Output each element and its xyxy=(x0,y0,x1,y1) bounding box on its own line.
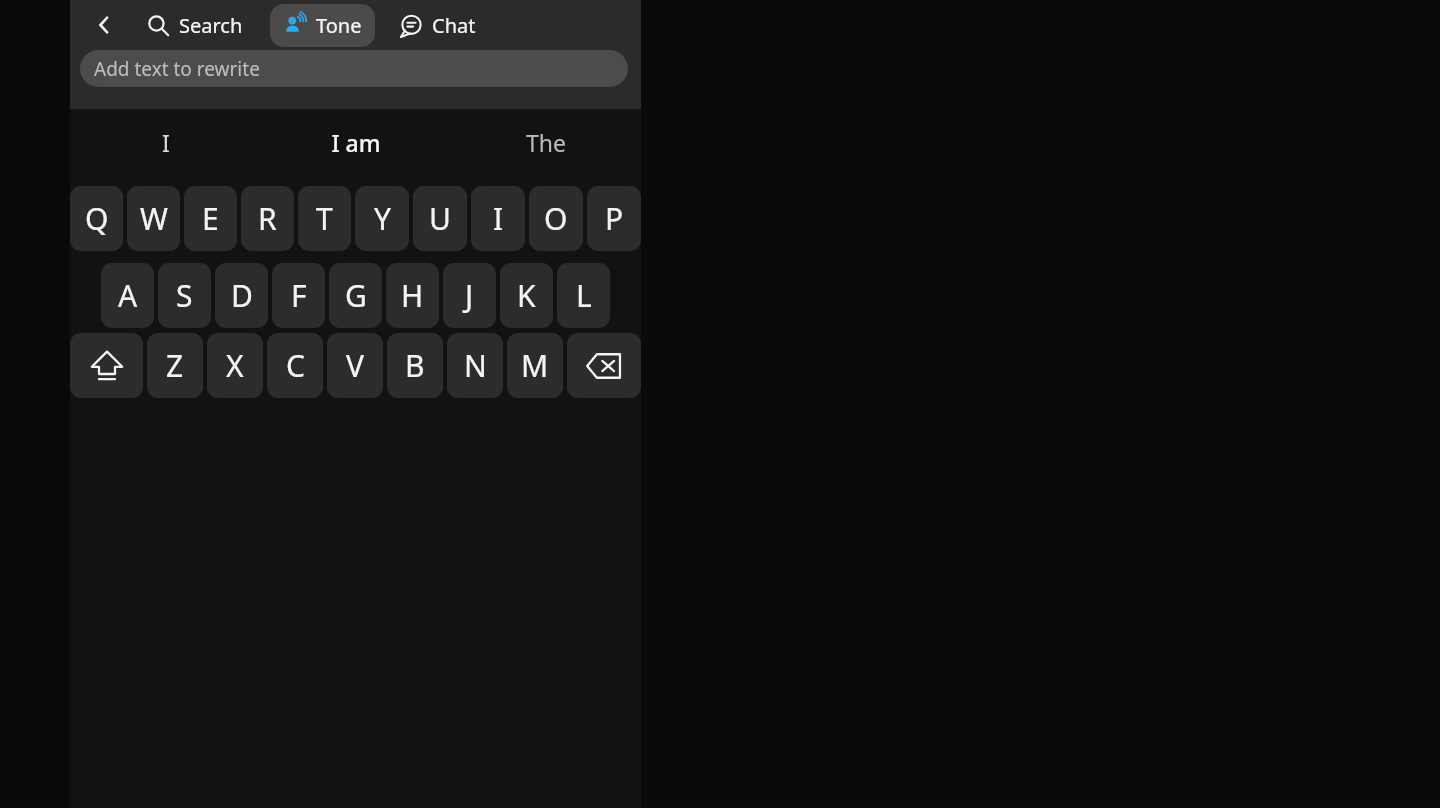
staticText: A xyxy=(118,275,138,316)
button[interactable]: G xyxy=(329,263,382,328)
button[interactable]: K xyxy=(500,263,553,328)
button[interactable]: E xyxy=(184,186,237,251)
button[interactable]: Q xyxy=(70,186,123,251)
button[interactable]: T xyxy=(298,186,351,251)
staticText: U xyxy=(429,198,451,239)
staticText: Y xyxy=(374,198,391,239)
staticText: W xyxy=(140,198,168,239)
staticText: R xyxy=(258,198,277,239)
staticText: T xyxy=(316,198,333,239)
staticText: V xyxy=(346,345,364,386)
staticText: Chat xyxy=(432,12,476,39)
button[interactable]: J xyxy=(443,263,496,328)
button[interactable]: Add text to rewrite xyxy=(80,50,628,87)
button[interactable]: Z xyxy=(147,333,203,398)
button[interactable]: S xyxy=(158,263,211,328)
button[interactable]: Y xyxy=(355,186,409,251)
staticText: C xyxy=(286,345,305,386)
staticText: P xyxy=(605,198,624,239)
button[interactable]: R xyxy=(241,186,294,251)
button[interactable]: O xyxy=(529,186,583,251)
staticText: E xyxy=(202,198,219,239)
staticText: L xyxy=(576,275,592,316)
staticText: I xyxy=(493,198,504,239)
button[interactable]: V xyxy=(327,333,383,398)
staticText: K xyxy=(517,275,536,316)
button[interactable]: W xyxy=(127,186,180,251)
button[interactable]: F xyxy=(272,263,325,328)
staticText: Tone xyxy=(316,12,362,39)
button[interactable]: D xyxy=(215,263,268,328)
button[interactable]: I am xyxy=(261,109,451,176)
button[interactable]: P xyxy=(587,186,641,251)
button[interactable]: X xyxy=(207,333,263,398)
button[interactable]: Back xyxy=(87,8,121,42)
button[interactable]: Shift xyxy=(70,333,143,398)
staticText: I xyxy=(162,127,170,158)
button[interactable]: A xyxy=(101,263,154,328)
button[interactable]: I xyxy=(471,186,525,251)
button[interactable]: N xyxy=(447,333,503,398)
staticText: O xyxy=(544,198,568,239)
button[interactable]: B xyxy=(387,333,443,398)
staticText: D xyxy=(231,275,253,316)
button[interactable]: L xyxy=(557,263,610,328)
staticText: Q xyxy=(85,198,109,239)
staticText: J xyxy=(465,275,474,316)
staticText: G xyxy=(345,275,367,316)
staticText: F xyxy=(291,275,307,316)
staticText: The xyxy=(526,127,566,158)
button[interactable]: H xyxy=(386,263,439,328)
button[interactable]: I xyxy=(70,109,261,176)
staticText: B xyxy=(405,345,425,386)
button[interactable]: C xyxy=(267,333,323,398)
button[interactable]: Backspace xyxy=(567,333,641,398)
button[interactable]: U xyxy=(413,186,467,251)
staticText: S xyxy=(176,275,193,316)
staticText: M xyxy=(521,345,549,386)
staticText: X xyxy=(226,345,244,386)
staticText: Add text to rewrite xyxy=(94,56,260,82)
staticText: Search xyxy=(179,12,243,39)
staticText: N xyxy=(464,345,487,386)
staticText: I am xyxy=(331,127,381,158)
staticText: Z xyxy=(166,345,184,386)
button[interactable]: Tone xyxy=(270,4,375,47)
staticText: H xyxy=(401,275,424,316)
button[interactable]: Search xyxy=(139,6,251,45)
button[interactable]: M xyxy=(507,333,563,398)
button[interactable]: Chat xyxy=(393,6,482,45)
button[interactable]: The xyxy=(451,109,641,176)
